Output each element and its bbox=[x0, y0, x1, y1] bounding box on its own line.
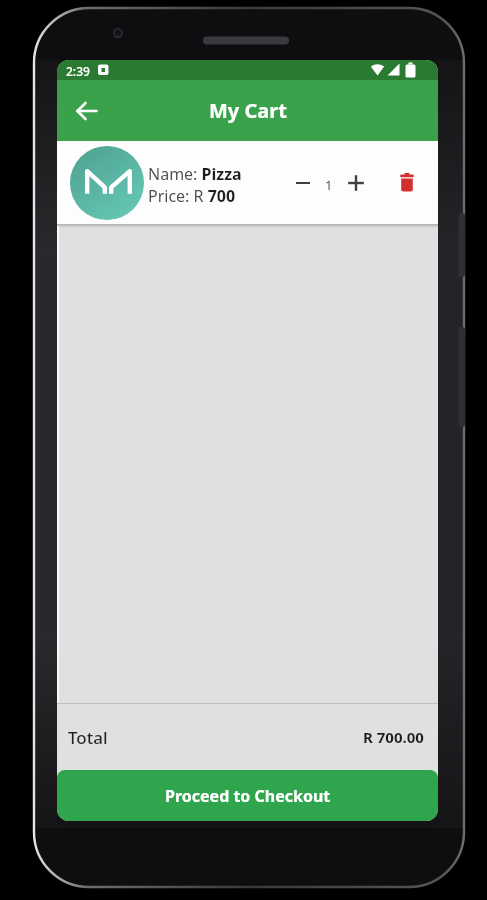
staticText: Price: R 700 bbox=[148, 185, 236, 207]
staticText: R 700.00 bbox=[363, 727, 424, 747]
staticText: Proceed to Checkout bbox=[165, 785, 331, 807]
button[interactable] bbox=[69, 93, 105, 129]
staticText: Total bbox=[68, 726, 108, 749]
staticText: 1 bbox=[325, 176, 333, 194]
button[interactable]: Proceed to Checkout bbox=[57, 770, 438, 821]
button[interactable] bbox=[393, 167, 421, 197]
staticText: Name: Pizza bbox=[148, 163, 242, 185]
staticText: 2:39 bbox=[66, 63, 90, 79]
staticText: My Cart bbox=[209, 97, 287, 124]
button[interactable] bbox=[289, 169, 317, 197]
button[interactable] bbox=[342, 169, 370, 197]
